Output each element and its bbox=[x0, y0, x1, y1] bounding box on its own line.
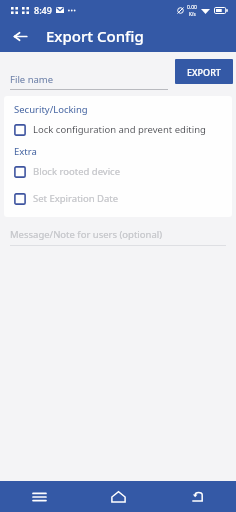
button[interactable]: Home bbox=[101, 481, 135, 512]
button[interactable]: Lock configuration and prevent editing bbox=[4, 121, 232, 138]
button[interactable]: Block rooted device bbox=[4, 163, 232, 180]
button[interactable]: Back bbox=[6, 22, 34, 50]
button[interactable]: Recents bbox=[22, 481, 56, 512]
staticText: K/s bbox=[189, 11, 196, 17]
staticText: Security/Locking bbox=[14, 103, 88, 116]
staticText: 0.00 bbox=[187, 4, 197, 11]
staticText: Extra bbox=[14, 145, 37, 158]
button[interactable]: Message/Note for users (optional) bbox=[10, 228, 226, 246]
staticText: Export Config bbox=[46, 26, 144, 46]
staticText: Lock configuration and prevent editing bbox=[33, 123, 206, 136]
button[interactable]: EXPORT bbox=[175, 59, 233, 84]
staticText: 8:49 bbox=[34, 4, 52, 16]
button[interactable]: Back bbox=[180, 481, 214, 512]
staticText: File name bbox=[10, 73, 54, 86]
button[interactable]: Set Expiration Date bbox=[4, 190, 232, 207]
staticText: Set Expiration Date bbox=[33, 192, 119, 205]
staticText: Block rooted device bbox=[33, 165, 121, 178]
button[interactable]: File name bbox=[10, 73, 168, 90]
staticText: Message/Note for users (optional) bbox=[10, 228, 163, 241]
staticText: EXPORT bbox=[187, 66, 221, 78]
